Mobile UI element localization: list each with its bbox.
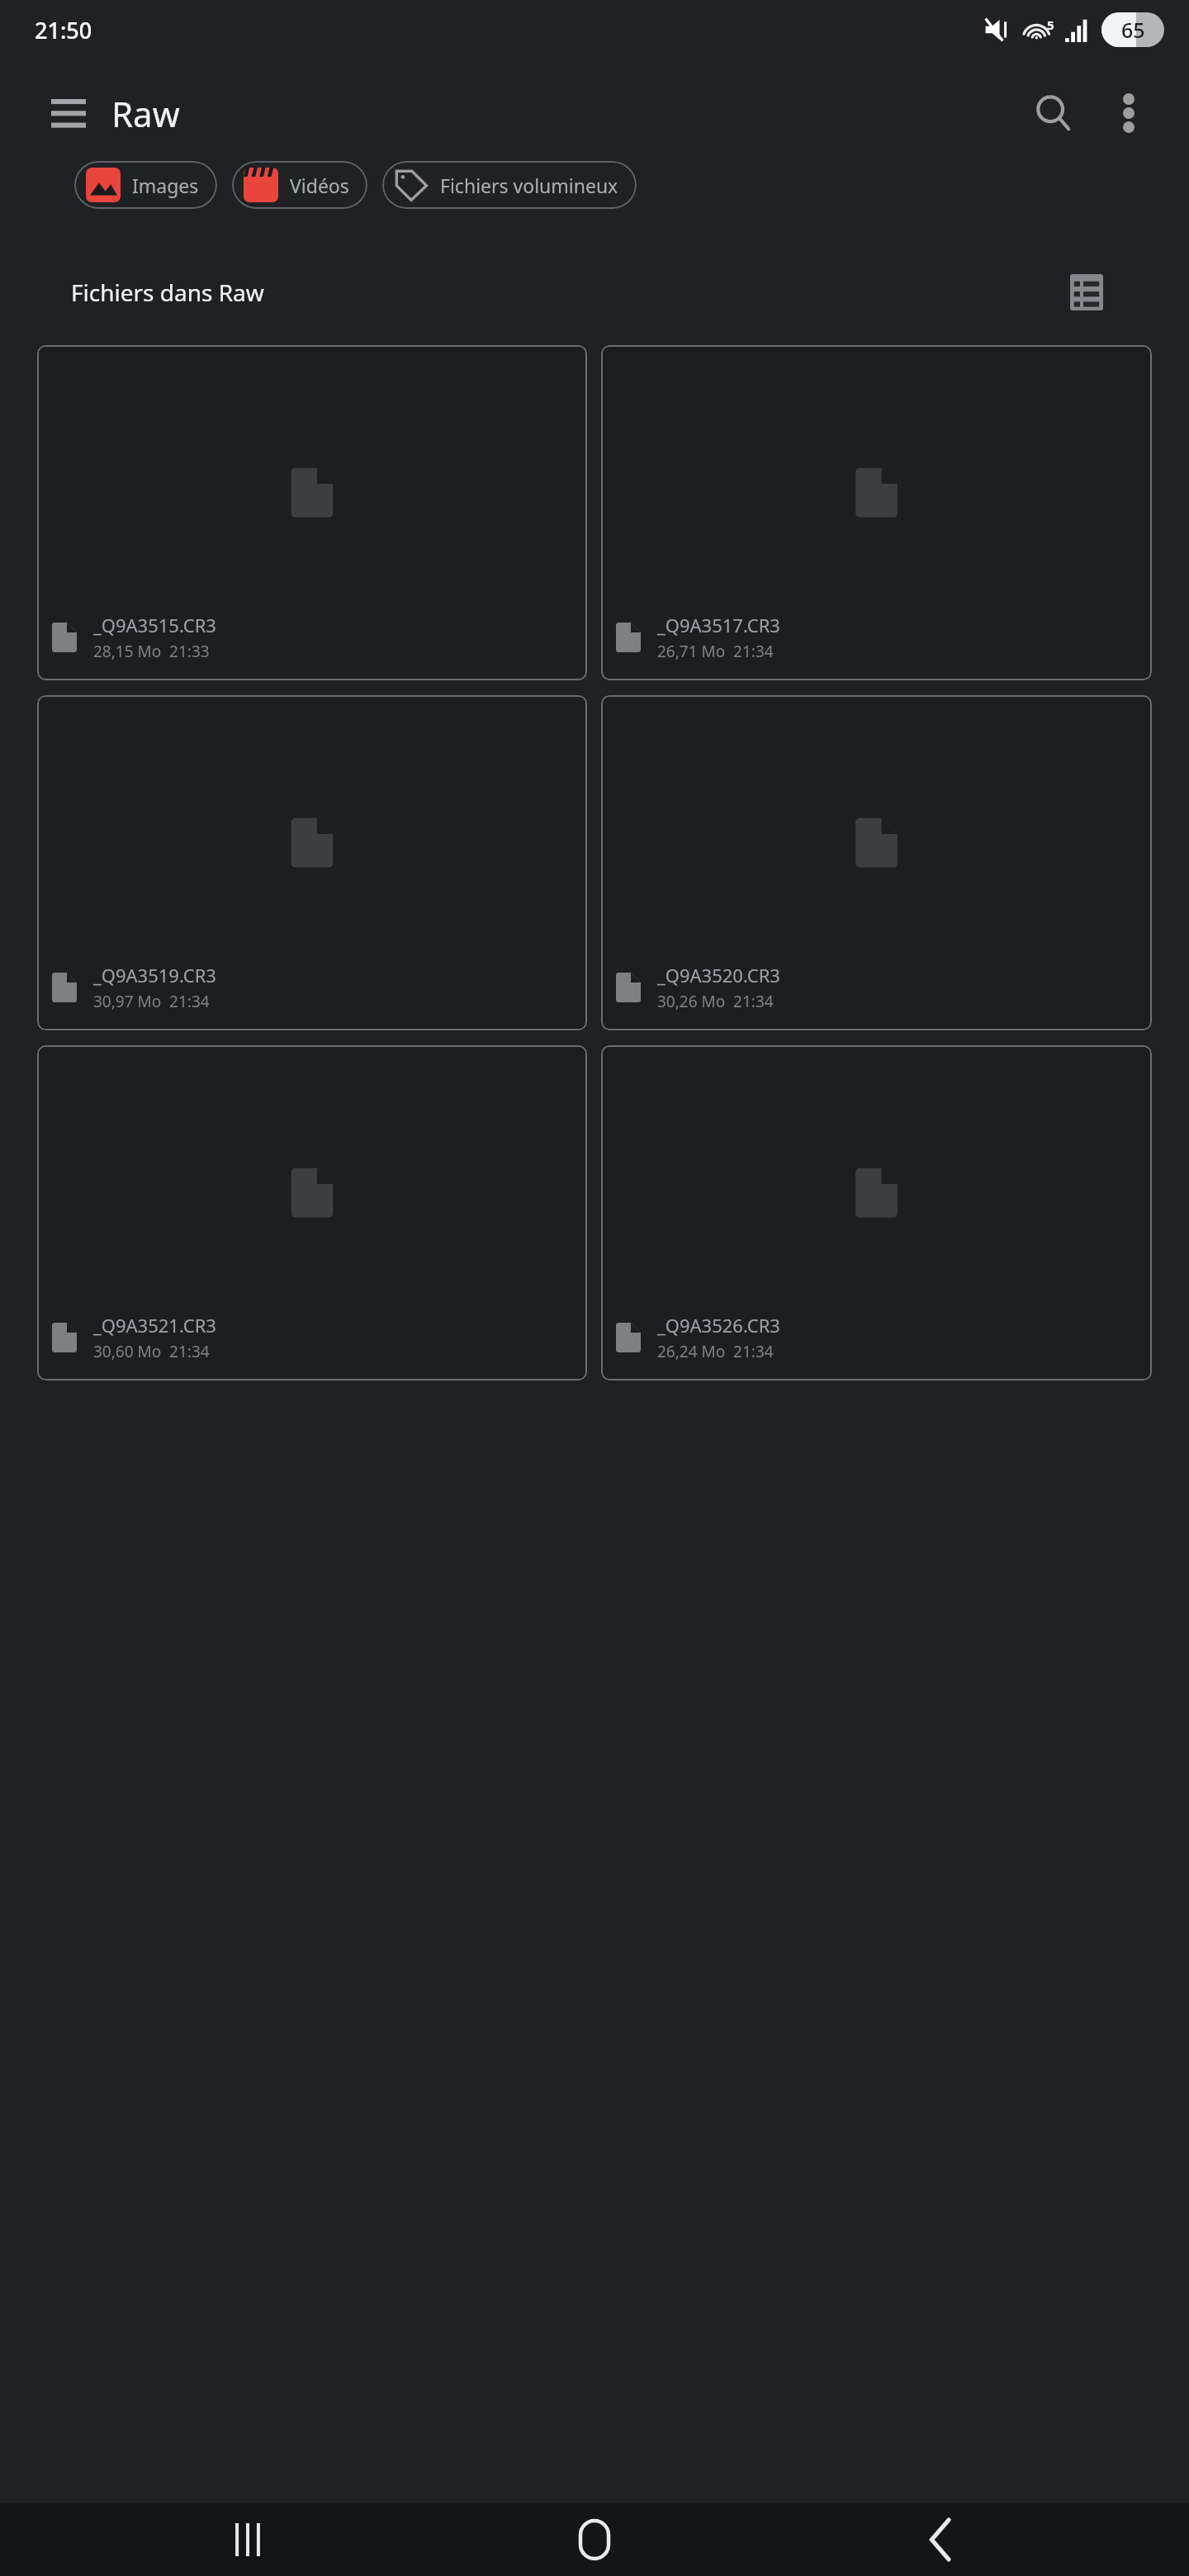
button[interactable]: _Q9A3526.CR3	[601, 1045, 1152, 1380]
button[interactable]: Recent apps	[206, 2503, 289, 2576]
button[interactable]: _Q9A3519.CR3	[37, 695, 587, 1030]
staticText: Vidéos	[290, 173, 349, 198]
button[interactable]: _Q9A3520.CR3	[601, 695, 1152, 1030]
staticText: 30,97 Mo 21:34	[93, 991, 210, 1012]
button[interactable]: _Q9A3517.CR3	[601, 345, 1152, 680]
button[interactable]: _Q9A3521.CR3	[37, 1045, 587, 1380]
staticText: _Q9A3515.CR3	[93, 613, 216, 637]
staticText: _Q9A3521.CR3	[93, 1313, 216, 1338]
button[interactable]: More options	[1093, 78, 1164, 149]
staticText: 30,60 Mo 21:34	[93, 1341, 210, 1362]
button[interactable]: Images	[74, 161, 217, 209]
staticText: _Q9A3519.CR3	[93, 963, 216, 987]
button[interactable]: Vidéos	[232, 161, 367, 209]
staticText: 26,24 Mo 21:34	[657, 1341, 774, 1362]
button[interactable]: Switch to list view	[1055, 261, 1118, 324]
staticText: 28,15 Mo 21:33	[93, 641, 210, 662]
button[interactable]: Fichiers volumineux	[382, 161, 637, 209]
staticText: 26,71 Mo 21:34	[657, 641, 774, 662]
staticText: 21:50	[35, 15, 92, 45]
button[interactable]: Home	[549, 2503, 640, 2576]
staticText: Fichiers volumineux	[440, 173, 618, 198]
staticText: 30,26 Mo 21:34	[657, 991, 774, 1012]
staticText: _Q9A3526.CR3	[657, 1313, 780, 1338]
staticText: Fichiers dans Raw	[71, 277, 264, 308]
staticText: _Q9A3520.CR3	[657, 963, 780, 987]
button[interactable]: Back	[900, 2503, 983, 2576]
button[interactable]: _Q9A3515.CR3	[37, 345, 587, 680]
staticText: 65	[1121, 16, 1145, 44]
staticText: Images	[132, 173, 199, 198]
button[interactable]: Search	[1014, 73, 1093, 153]
staticText: _Q9A3517.CR3	[657, 613, 780, 637]
staticText: 5	[1047, 17, 1054, 33]
staticText: Raw	[111, 90, 180, 137]
button[interactable]: Menu	[40, 84, 97, 142]
